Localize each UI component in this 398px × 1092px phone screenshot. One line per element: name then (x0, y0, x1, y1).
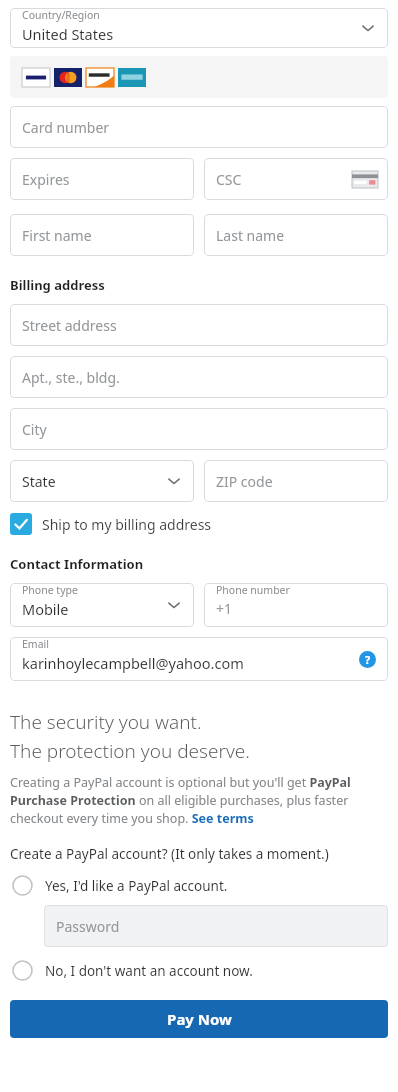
staticText: Password (56, 917, 120, 936)
staticText: Ship to my billing address (42, 515, 212, 534)
button[interactable]: Country/Region (10, 8, 388, 48)
button[interactable]: Card number (10, 106, 388, 148)
staticText: First name (22, 226, 92, 245)
button[interactable]: No, I don't want an account now. (10, 960, 388, 981)
staticText: Last name (216, 226, 285, 245)
staticText: United States (22, 24, 114, 44)
staticText: The protection you deserve. (10, 738, 250, 764)
button[interactable]: City (10, 408, 388, 450)
staticText: Creating a PayPal account is optional bu… (10, 774, 388, 827)
button[interactable]: Last name (204, 214, 388, 256)
staticText: Card number (22, 118, 110, 137)
staticText: Create a PayPal account? (It only takes … (10, 845, 329, 863)
button[interactable]: Phone number (204, 583, 388, 627)
staticText: Expires (22, 170, 70, 189)
staticText: CSC (216, 170, 242, 189)
staticText: City (22, 420, 47, 439)
staticText: karinhoylecampbell@yahoo.com (22, 653, 244, 673)
button[interactable]: Expires (10, 158, 194, 200)
staticText: Mobile (22, 599, 69, 619)
button[interactable]: Yes, I'd like a PayPal account. (10, 875, 388, 896)
button[interactable]: ZIP code (204, 460, 388, 502)
staticText: Country/Region (22, 8, 100, 22)
button[interactable]: Ship to my billing address (10, 513, 388, 535)
staticText: Phone number (216, 583, 290, 597)
button[interactable]: Pay Now (10, 1000, 388, 1038)
staticText: Yes, I'd like a PayPal account. (45, 877, 228, 895)
button[interactable]: Phone type (10, 583, 194, 627)
staticText: Pay Now (167, 1009, 232, 1029)
staticText: ? (365, 652, 371, 667)
button[interactable]: Email (10, 637, 388, 681)
staticText: Phone type (22, 583, 78, 597)
staticText: State (22, 472, 56, 491)
staticText: Email (22, 637, 49, 651)
staticText: Billing address (10, 276, 105, 294)
button[interactable]: State (10, 460, 194, 502)
button[interactable]: Help about email (359, 651, 376, 668)
button[interactable]: CSC (204, 158, 388, 200)
staticText: Contact Information (10, 555, 144, 573)
staticText: Apt., ste., bldg. (22, 368, 120, 387)
staticText: No, I don't want an account now. (45, 962, 253, 980)
staticText: The security you want. (10, 709, 202, 735)
staticText: ZIP code (216, 472, 273, 491)
button[interactable]: First name (10, 214, 194, 256)
staticText: Street address (22, 316, 117, 335)
staticText: +1 (216, 599, 233, 618)
button[interactable]: Apt., ste., bldg. (10, 356, 388, 398)
button[interactable]: Street address (10, 304, 388, 346)
button[interactable]: Password (44, 905, 388, 947)
